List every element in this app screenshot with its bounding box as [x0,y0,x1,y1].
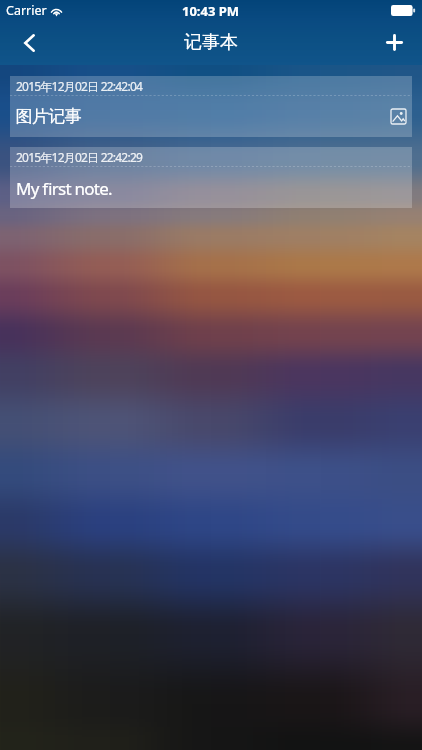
button[interactable]: 2015年12月02日 22:42:04 [10,76,412,137]
staticText: 记事本 [184,31,238,54]
button[interactable]: Back [0,20,54,65]
staticText: 2015年12月02日 22:42:04 [16,78,143,94]
staticText: 图片记事 [16,106,81,127]
button[interactable]: Add note [368,20,422,65]
button[interactable]: 2015年12月02日 22:42:29 [10,147,412,208]
staticText: 10:43 PM [182,2,240,20]
staticText: My first note. [16,177,112,200]
staticText: Carrier [6,2,47,19]
staticText: 2015年12月02日 22:42:29 [16,149,143,165]
